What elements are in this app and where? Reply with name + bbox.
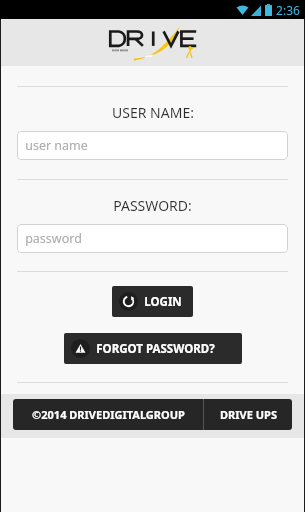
staticText: PASSWORD: (113, 196, 192, 215)
button[interactable]: ©2014 DRIVEDIGITALGROUP (13, 399, 203, 430)
button[interactable]: FORGOT PASSWORD? (64, 333, 242, 364)
staticText: 2:36 (276, 2, 300, 18)
staticText: FORGOT PASSWORD? (96, 341, 215, 357)
staticText: password (25, 230, 82, 247)
button[interactable]: Password field (17, 224, 288, 253)
staticText: ©2014 DRIVEDIGITALGROUP (32, 407, 185, 422)
button[interactable]: User name field (17, 131, 288, 160)
staticText: DRIVE UPS (220, 407, 277, 422)
other: Drive Digital Group logo (105, 25, 201, 61)
staticText: user name (25, 137, 88, 154)
staticText: USER NAME: (112, 103, 194, 122)
staticText: LOGIN (144, 294, 182, 310)
button[interactable]: DRIVE UPS (204, 399, 292, 430)
button[interactable]: LOGIN (112, 286, 193, 317)
